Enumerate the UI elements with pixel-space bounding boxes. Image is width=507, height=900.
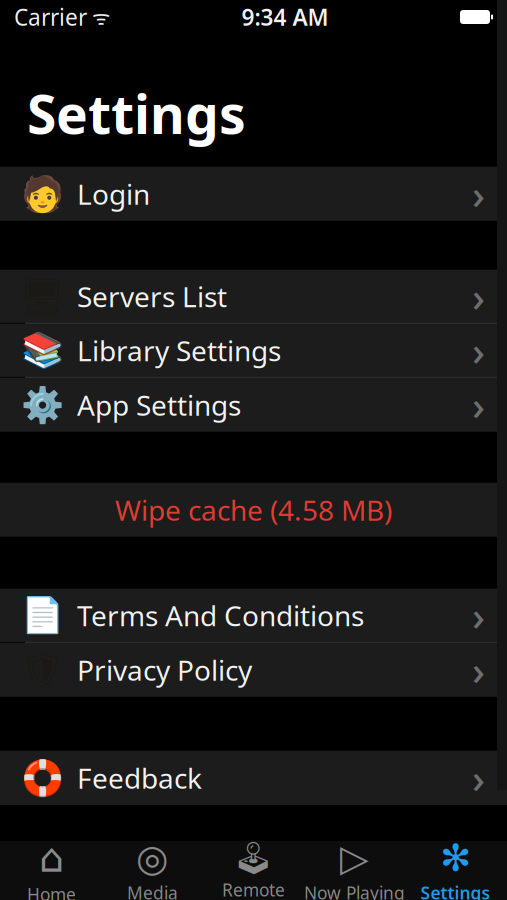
staticText: Privacy Policy xyxy=(77,651,252,688)
button[interactable]: ✻ xyxy=(405,841,506,900)
staticText: 🧑 xyxy=(20,174,63,214)
staticText: Terms And Conditions xyxy=(77,597,364,634)
staticText: Feedback xyxy=(77,759,202,796)
button[interactable]: 🛟 xyxy=(0,751,507,805)
staticText: 📄 xyxy=(20,595,63,635)
staticText: Home xyxy=(27,883,76,900)
staticText: › xyxy=(472,643,485,696)
staticText: Settings xyxy=(27,78,246,149)
staticText: ✻ xyxy=(440,837,471,879)
staticText: ⚙️ xyxy=(20,385,63,425)
button[interactable]: 🖥 xyxy=(0,270,507,324)
staticText: Library Settings xyxy=(77,332,281,369)
button[interactable]: ⚙️ xyxy=(0,378,507,432)
staticText: Now Playing xyxy=(304,881,405,900)
staticText: 📚 xyxy=(20,330,63,370)
staticText: 🛟 xyxy=(20,758,63,798)
staticText: ◎ xyxy=(136,837,169,879)
staticText: ▷ xyxy=(340,837,369,879)
staticText: 🕹 xyxy=(233,840,274,876)
staticText: › xyxy=(472,378,485,431)
staticText: › xyxy=(472,324,485,377)
staticText: Media xyxy=(127,881,178,900)
button[interactable]: 🛡 xyxy=(0,643,507,697)
button[interactable]: ⌂ xyxy=(1,841,102,900)
staticText: › xyxy=(472,751,485,804)
button[interactable]: 📚 xyxy=(0,324,507,378)
staticText: Remote xyxy=(222,878,285,900)
staticText: Login xyxy=(77,175,150,212)
button[interactable]: 📄 xyxy=(0,589,507,643)
staticText: ᯤ xyxy=(87,4,110,30)
button[interactable]: ▷ xyxy=(304,841,405,900)
staticText: Wipe cache (4.58 MB) xyxy=(115,491,392,528)
staticText: App Settings xyxy=(77,386,241,423)
staticText: Settings xyxy=(420,881,490,900)
button[interactable]: 🧑 xyxy=(0,167,507,221)
staticText: 9:34 AM xyxy=(241,2,328,32)
staticText: ⌂ xyxy=(39,835,64,881)
button[interactable]: ◎ xyxy=(102,841,203,900)
staticText: › xyxy=(472,167,485,220)
staticText: › xyxy=(472,270,485,323)
staticText: › xyxy=(472,589,485,642)
button[interactable]: 🕹 xyxy=(203,841,304,900)
button[interactable]: Wipe cache (4.58 MB) xyxy=(0,483,507,537)
staticText: Servers List xyxy=(77,278,227,315)
staticText: Carrier xyxy=(14,2,87,32)
